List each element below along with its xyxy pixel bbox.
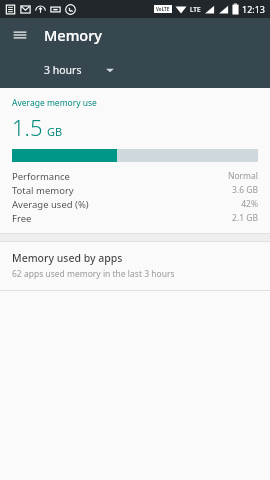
staticText: Memory used by apps	[12, 251, 123, 265]
staticText: 42%	[241, 198, 258, 210]
staticText: 2.1 GB	[232, 212, 258, 224]
button[interactable]: Memory used by apps	[0, 242, 270, 290]
staticText: Performance	[12, 170, 70, 183]
staticText: 1.5	[12, 112, 43, 142]
staticText: Total memory	[12, 184, 74, 197]
staticText: GB	[47, 124, 63, 139]
staticText: 62 apps used memory in the last 3 hours	[12, 268, 175, 280]
staticText: 3.6 GB	[232, 184, 258, 196]
button[interactable]: Open navigation drawer	[8, 23, 32, 47]
button[interactable]: Performance	[0, 169, 270, 183]
staticText: Free	[12, 212, 32, 225]
button[interactable]: Average used (%)	[0, 197, 270, 211]
staticText: Average used (%)	[12, 198, 89, 211]
staticText: Normal	[227, 170, 258, 182]
button[interactable]: Free	[0, 211, 270, 225]
staticText: LTE	[190, 5, 201, 14]
staticText: Memory	[44, 25, 103, 45]
staticText: 12:13	[242, 3, 266, 15]
staticText: VoLTE	[156, 6, 170, 12]
staticText: 3 hours	[44, 63, 82, 77]
staticText: Average memory use	[12, 97, 97, 109]
button[interactable]: 3 hours	[38, 59, 120, 81]
button[interactable]: Total memory	[0, 183, 270, 197]
